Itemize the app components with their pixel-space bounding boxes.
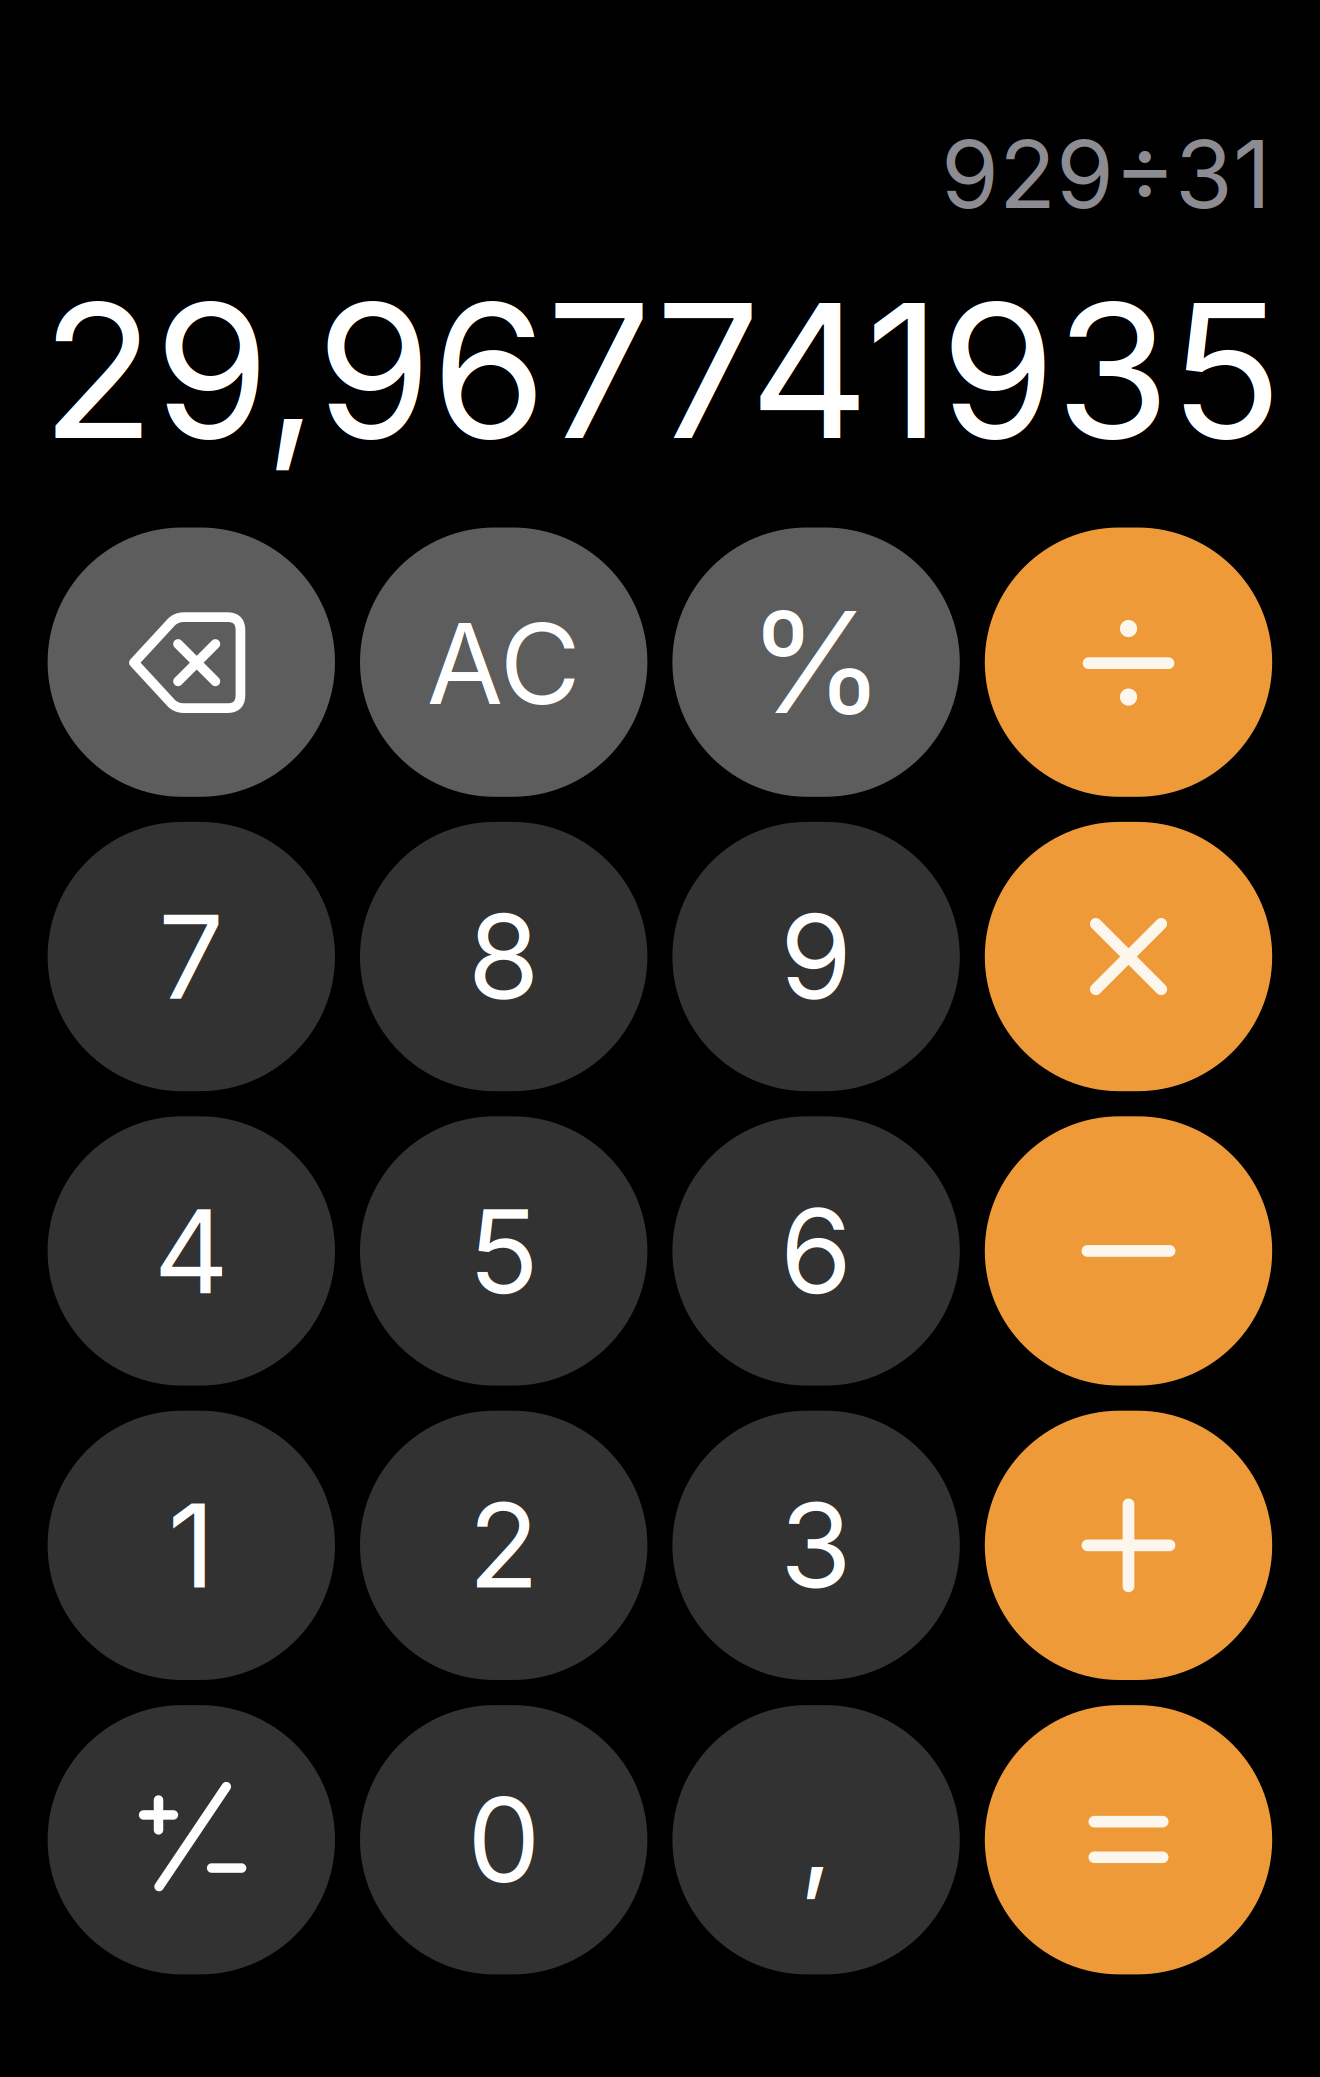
staticText: AC [427,597,581,731]
button[interactable]: 6 [672,1116,960,1386]
button[interactable]: Plus minus [48,1705,335,1974]
button[interactable]: 1 [48,1411,335,1680]
button[interactable]: 8 [360,822,647,1091]
button[interactable]: Subtract [985,1116,1272,1386]
staticText: 29,967741935 [41,258,1282,483]
button[interactable]: 3 [672,1411,960,1680]
button[interactable]: Multiply [985,822,1272,1091]
button[interactable]: , [672,1705,960,1974]
button[interactable]: AC [360,527,647,797]
button[interactable]: Delete [48,527,335,797]
staticText: 7 [158,886,224,1027]
staticText: , [800,1767,833,1907]
button[interactable]: Add [985,1411,1272,1680]
staticText: 2 [468,1475,539,1616]
button[interactable]: Divide [985,527,1272,797]
staticText: 929÷31 [941,117,1271,230]
button[interactable]: 2 [360,1411,647,1680]
staticText: 1 [168,1475,215,1616]
staticText: 6 [780,1181,852,1321]
staticText: 5 [468,1181,539,1321]
staticText: 0 [467,1770,540,1910]
button[interactable]: 4 [48,1116,335,1386]
button[interactable]: 7 [48,822,335,1091]
button[interactable]: Equals [985,1705,1272,1974]
staticText: % [748,577,885,747]
button[interactable]: 5 [360,1116,647,1386]
staticText: 3 [780,1475,852,1616]
button[interactable]: 9 [672,822,960,1091]
staticText: 4 [154,1181,229,1321]
staticText: 8 [468,886,540,1027]
staticText: 9 [780,886,852,1027]
button[interactable]: 0 [360,1705,647,1974]
button[interactable]: % [672,527,960,797]
